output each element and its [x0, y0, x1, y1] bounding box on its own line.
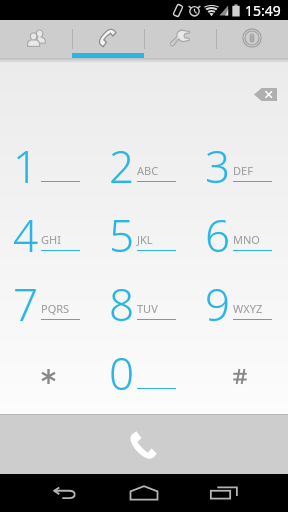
- staticText: GHI: [41, 232, 61, 247]
- button[interactable]: Call: [0, 415, 288, 474]
- button[interactable]: [0, 354, 96, 414]
- button[interactable]: 5: [96, 216, 192, 285]
- button[interactable]: Backspace: [254, 88, 277, 101]
- button[interactable]: Contacts: [0, 20, 72, 58]
- staticText: MNO: [233, 232, 260, 247]
- staticText: WXYZ: [233, 301, 263, 316]
- staticText: 15:49: [245, 1, 281, 20]
- button[interactable]: 8: [96, 285, 192, 354]
- staticText: TUV: [137, 301, 158, 316]
- button[interactable]: Back: [37, 476, 91, 510]
- button[interactable]: Dialer: [72, 20, 144, 58]
- staticText: PQRS: [41, 301, 70, 316]
- staticText: DEF: [233, 163, 253, 178]
- staticText: 7: [13, 274, 39, 334]
- button[interactable]: Settings: [144, 20, 216, 58]
- staticText: 3: [205, 136, 231, 196]
- staticText: JKL: [137, 232, 153, 247]
- staticText: 9: [205, 274, 231, 334]
- staticText: 1: [13, 136, 39, 196]
- staticText: 2: [109, 136, 135, 196]
- button[interactable]: [192, 354, 288, 414]
- staticText: 0: [109, 343, 135, 403]
- button[interactable]: 7: [0, 285, 96, 354]
- button[interactable]: 4: [0, 216, 96, 285]
- button[interactable]: 1: [0, 147, 96, 216]
- button[interactable]: 6: [192, 216, 288, 285]
- staticText: 5: [109, 205, 135, 265]
- button[interactable]: 9: [192, 285, 288, 354]
- button[interactable]: Voicemail: [216, 20, 288, 58]
- staticText: 4: [13, 205, 39, 265]
- staticText: 8: [109, 274, 135, 334]
- button[interactable]: 2: [96, 147, 192, 216]
- staticText: 6: [205, 205, 231, 265]
- button[interactable]: 0: [96, 354, 192, 414]
- button[interactable]: Home: [117, 476, 171, 510]
- button[interactable]: 3: [192, 147, 288, 216]
- button[interactable]: Recent apps: [197, 476, 251, 510]
- staticText: ABC: [137, 163, 159, 178]
